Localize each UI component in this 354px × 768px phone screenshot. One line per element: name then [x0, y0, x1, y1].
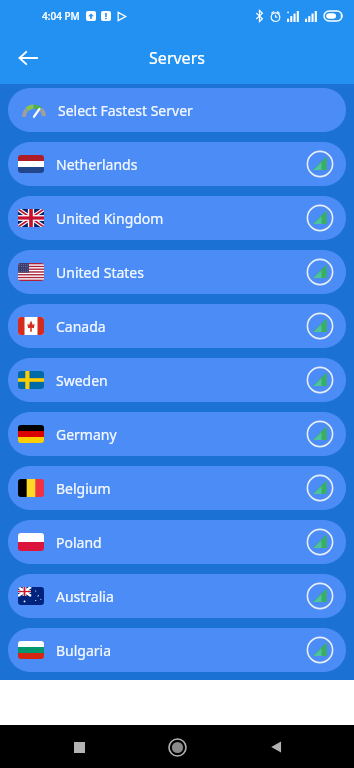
button[interactable]: United States — [8, 250, 346, 294]
button[interactable]: Signal strength — [306, 150, 334, 178]
button[interactable]: Home — [157, 727, 197, 767]
button[interactable]: Signal strength — [306, 582, 334, 610]
button[interactable]: Signal strength — [306, 474, 334, 502]
staticText: Servers — [149, 47, 205, 69]
staticText: Canada — [56, 317, 106, 336]
button[interactable]: Back — [8, 38, 48, 78]
button[interactable]: Signal strength — [306, 258, 334, 286]
staticText: Australia — [56, 587, 114, 606]
button[interactable]: Poland — [8, 520, 346, 564]
button[interactable]: Belgium — [8, 466, 346, 510]
staticText: Germany — [56, 425, 117, 444]
staticText: Belgium — [56, 479, 111, 498]
button[interactable]: Netherlands — [8, 142, 346, 186]
button[interactable]: Australia — [8, 574, 346, 618]
button[interactable]: Bulgaria — [8, 628, 346, 672]
staticText: 4:04 PM — [42, 9, 80, 23]
button[interactable]: Back — [256, 727, 296, 767]
staticText: Bulgaria — [56, 641, 112, 660]
button[interactable]: Canada — [8, 304, 346, 348]
button[interactable]: Germany — [8, 412, 346, 456]
staticText: Sweden — [56, 371, 108, 390]
button[interactable]: Signal strength — [306, 528, 334, 556]
staticText: United Kingdom — [56, 209, 164, 228]
button[interactable]: Select Fastest Server — [8, 88, 346, 132]
button[interactable]: Sweden — [8, 358, 346, 402]
button[interactable]: Signal strength — [306, 312, 334, 340]
button[interactable]: Signal strength — [306, 420, 334, 448]
button[interactable]: Signal strength — [306, 636, 334, 664]
button[interactable]: Recent apps — [59, 727, 99, 767]
staticText: Select Fastest Server — [58, 101, 193, 120]
staticText: Poland — [56, 533, 102, 552]
staticText: Netherlands — [56, 155, 138, 174]
button[interactable]: United Kingdom — [8, 196, 346, 240]
button[interactable]: Signal strength — [306, 366, 334, 394]
staticText: United States — [56, 263, 144, 282]
button[interactable]: Signal strength — [306, 204, 334, 232]
